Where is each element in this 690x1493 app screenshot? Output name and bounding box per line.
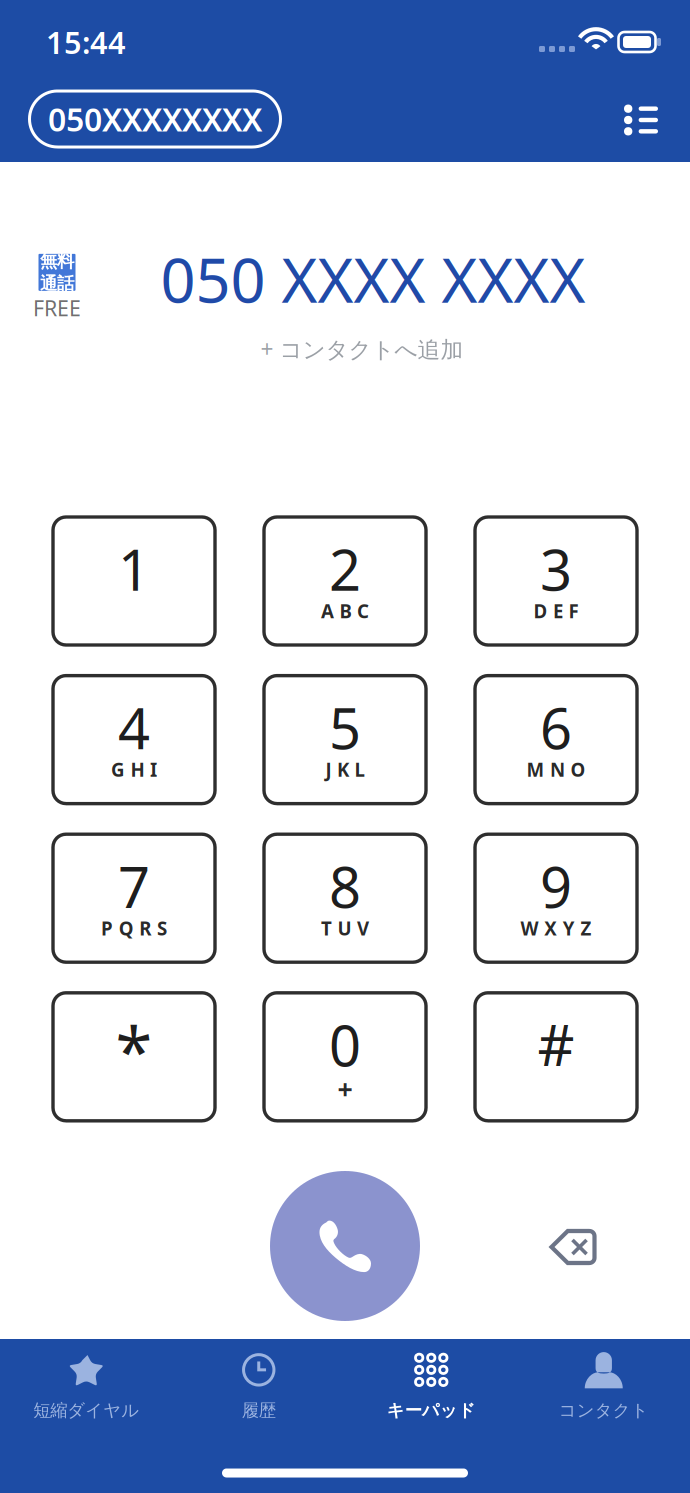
staticText: GHI [111,757,157,782]
staticText: 無料 [40,250,74,272]
button[interactable]: Call [270,1171,420,1321]
staticText: WXYZ [521,916,591,941]
staticText: 1 [118,532,150,606]
button[interactable]: 8 [264,834,426,962]
staticText: ABC [321,599,369,623]
staticText: # [537,1006,574,1082]
staticText: TUV [321,916,369,941]
button[interactable]: * [53,993,215,1121]
staticText: 050XXXXXXXX [48,98,262,140]
button[interactable]: 1 [53,517,215,645]
button[interactable]: 0 [264,993,426,1121]
button[interactable]: 9 [475,834,637,962]
button[interactable]: コンタクト [518,1348,690,1428]
staticText: * [115,1006,152,1095]
staticText: DEF [533,599,579,623]
staticText: 5 [329,690,361,765]
staticText: + [337,1071,352,1106]
staticText: 7 [118,849,150,923]
button[interactable]: Delete [528,1202,618,1292]
button[interactable]: 履歴 [173,1348,345,1428]
staticText: コンタクト [559,1400,649,1421]
staticText: 3 [540,532,572,606]
staticText: 8 [329,849,361,923]
button[interactable]: 3 [475,517,637,645]
button[interactable]: 短縮ダイヤル [0,1348,172,1428]
staticText: 050 XXXX XXXX [160,238,585,320]
staticText: キーパッド [387,1400,476,1421]
button[interactable]: 4 [53,676,215,804]
button[interactable]: Call history [606,85,676,155]
staticText: MNO [526,757,586,782]
button[interactable]: 5 [264,676,426,804]
button[interactable]: 7 [53,834,215,962]
staticText: FREE [33,294,81,322]
staticText: 短縮ダイヤル [33,1400,139,1421]
staticText: 履歴 [242,1400,276,1421]
button[interactable]: # [475,993,637,1121]
staticText: JKL [325,757,365,782]
staticText: 0 [329,1008,361,1082]
button[interactable]: 6 [475,676,637,804]
staticText: 15:44 [46,22,126,62]
button[interactable]: キーパッド [345,1348,517,1428]
staticText: 9 [540,849,572,923]
staticText: 通話 [40,273,74,294]
staticText: 2 [329,532,361,606]
staticText: 4 [118,690,150,765]
staticText: + コンタクトへ追加 [260,334,463,364]
staticText: PQRS [101,916,167,941]
button[interactable]: 2 [264,517,426,645]
staticText: 6 [540,690,572,765]
button[interactable]: + コンタクトへ追加 [252,326,471,372]
button[interactable]: 050XXXXXXXX [29,91,280,147]
